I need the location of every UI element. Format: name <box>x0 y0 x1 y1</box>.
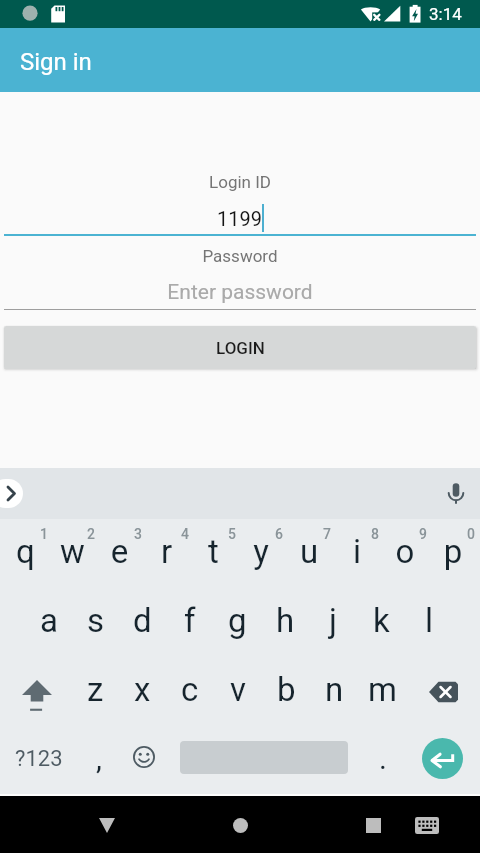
staticText: 2 <box>87 526 95 542</box>
staticText: Login ID <box>0 172 480 192</box>
staticText: 3 <box>134 526 142 542</box>
staticText: t <box>190 532 237 571</box>
button[interactable]: f <box>166 588 213 657</box>
staticText: d <box>133 601 152 640</box>
button[interactable]: w <box>49 519 96 588</box>
staticText: l <box>425 601 434 640</box>
staticText: 9 <box>419 526 427 542</box>
button[interactable]: Shift <box>2 657 72 726</box>
button[interactable]: n <box>310 657 358 726</box>
button[interactable]: m <box>358 657 406 726</box>
button[interactable]: h <box>261 588 309 657</box>
staticText: 3:14 <box>429 4 462 24</box>
button[interactable]: q <box>2 519 49 588</box>
staticText: a <box>40 601 58 640</box>
staticText: , <box>96 741 102 776</box>
button[interactable]: Enter <box>408 726 480 794</box>
staticText: r <box>143 532 190 571</box>
button[interactable]: y <box>237 519 285 588</box>
staticText: g <box>228 601 247 640</box>
button[interactable]: Recents <box>347 799 399 851</box>
button[interactable]: Voice input <box>440 478 472 510</box>
button[interactable]: b <box>262 657 310 726</box>
button[interactable]: k <box>357 588 405 657</box>
button[interactable]: a <box>25 588 72 657</box>
staticText: 7 <box>323 526 331 542</box>
staticText: 6 <box>275 526 283 542</box>
button[interactable]: , <box>77 726 120 794</box>
staticText: 5 <box>228 526 236 542</box>
staticText: c <box>181 670 199 709</box>
button[interactable]: More suggestions <box>0 479 23 508</box>
staticText: m <box>368 670 397 709</box>
staticText: 8 <box>371 526 379 542</box>
button[interactable]: s <box>72 588 119 657</box>
button[interactable]: z <box>72 657 119 726</box>
button[interactable]: l <box>405 588 453 657</box>
staticText: e <box>96 532 143 571</box>
button[interactable]: j <box>309 588 357 657</box>
staticText: f <box>184 601 196 640</box>
button[interactable]: v <box>214 657 262 726</box>
staticText: o <box>381 532 429 571</box>
button[interactable]: u <box>285 519 333 588</box>
staticText: p <box>429 532 477 571</box>
staticText: Sign in <box>20 48 92 76</box>
staticText: . <box>379 741 387 776</box>
staticText: y <box>237 532 285 571</box>
staticText: Password <box>0 246 480 266</box>
button[interactable]: Home <box>214 799 266 851</box>
button[interactable]: c <box>166 657 214 726</box>
staticText: 4 <box>181 526 189 542</box>
staticText: z <box>87 670 104 709</box>
staticText: 0 <box>467 526 475 542</box>
button[interactable]: d <box>119 588 166 657</box>
button[interactable]: r <box>143 519 190 588</box>
staticText: LOGIN <box>216 338 265 358</box>
staticText: s <box>87 601 105 640</box>
staticText: q <box>2 532 49 571</box>
button[interactable]: Emoji <box>120 726 168 794</box>
staticText: x <box>134 670 151 709</box>
staticText: 1 <box>40 526 48 542</box>
button[interactable]: g <box>213 588 261 657</box>
staticText: ?123 <box>15 746 63 772</box>
button[interactable]: e <box>96 519 143 588</box>
button[interactable]: t <box>190 519 237 588</box>
button[interactable]: p <box>429 519 477 588</box>
staticText: b <box>277 670 296 709</box>
button[interactable]: Back <box>81 799 133 851</box>
button[interactable]: i <box>333 519 381 588</box>
button[interactable]: x <box>119 657 166 726</box>
button[interactable]: LOGIN <box>4 326 476 369</box>
staticText: Enter password <box>0 280 480 305</box>
button[interactable]: . <box>360 726 408 794</box>
button[interactable]: ?123 <box>0 726 77 794</box>
button[interactable]: Switch keyboard <box>401 799 453 851</box>
button[interactable]: o <box>381 519 429 588</box>
staticText: v <box>230 670 246 709</box>
button[interactable]: Space <box>168 726 360 794</box>
staticText: j <box>329 601 337 640</box>
staticText: u <box>285 532 333 571</box>
staticText: i <box>333 532 381 571</box>
staticText: 1199 <box>217 207 262 230</box>
staticText: k <box>373 601 390 640</box>
button[interactable]: Backspace <box>406 657 477 726</box>
staticText: n <box>325 670 344 709</box>
staticText: h <box>276 601 295 640</box>
staticText: w <box>49 532 96 571</box>
